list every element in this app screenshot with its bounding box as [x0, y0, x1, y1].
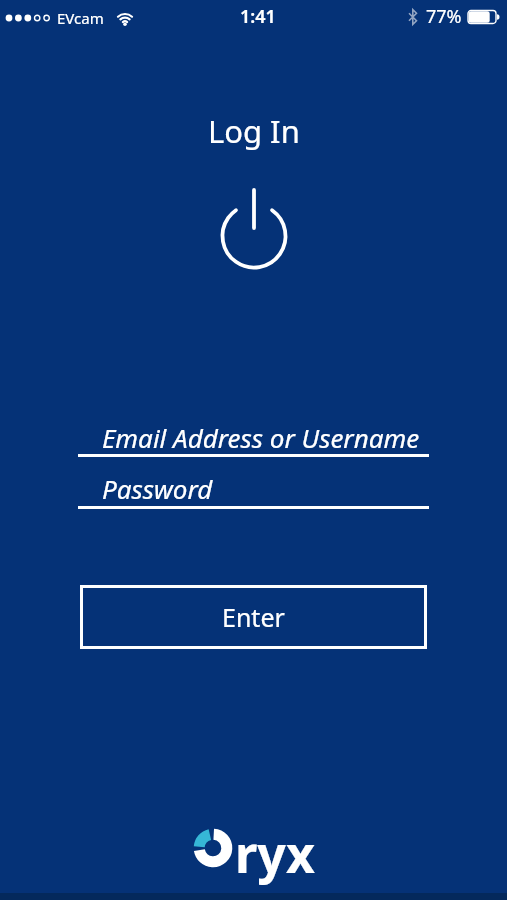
staticText: ryx [235, 820, 315, 888]
staticText: Enter [222, 600, 285, 634]
staticText: Log In [208, 110, 300, 152]
staticText: EVcam [57, 8, 104, 28]
staticText: Email Address or Username [102, 420, 420, 455]
staticText: 1:41 [240, 4, 276, 29]
button[interactable]: Email Address or Username [78, 412, 429, 457]
button[interactable]: Enter [80, 585, 427, 649]
staticText: 77% [426, 4, 462, 29]
staticText: Password [102, 471, 213, 506]
button[interactable]: Password [78, 464, 429, 509]
